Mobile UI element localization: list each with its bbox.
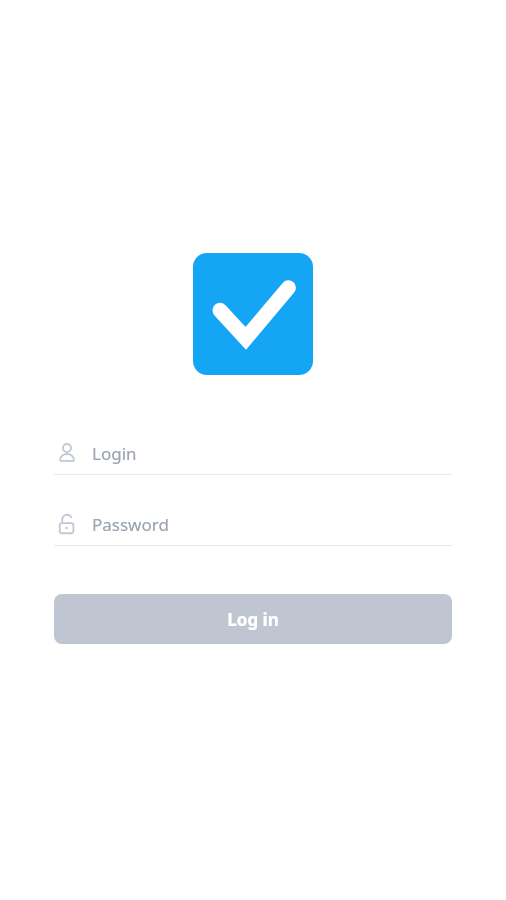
- staticText: Log in: [227, 608, 279, 631]
- button[interactable]: Login: [54, 432, 452, 475]
- staticText: Password: [92, 513, 169, 536]
- button[interactable]: Password: [54, 503, 452, 546]
- other: Password: [54, 511, 80, 537]
- staticText: Login: [92, 442, 137, 465]
- button[interactable]: Log in: [54, 594, 452, 644]
- other: Login: [54, 440, 80, 466]
